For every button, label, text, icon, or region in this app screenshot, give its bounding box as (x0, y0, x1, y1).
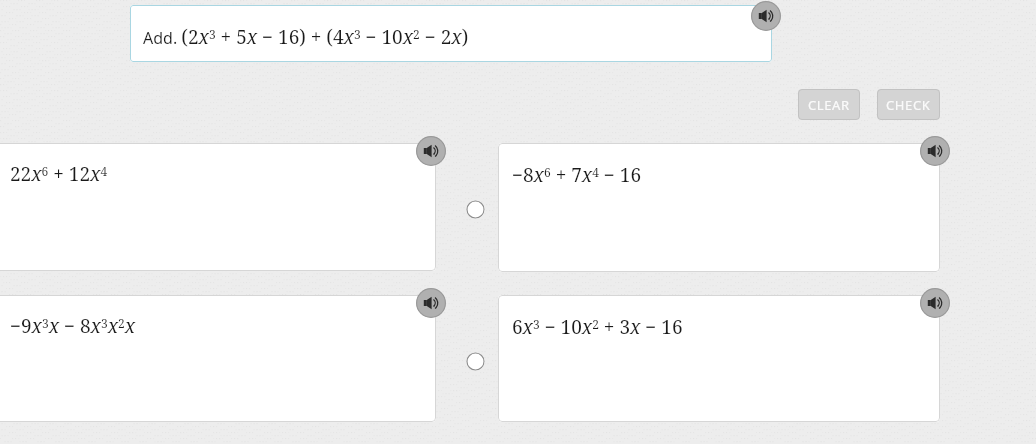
staticText: −9x3x − 8x3x2x (10, 313, 136, 339)
button[interactable]: CHECK (877, 89, 940, 120)
button[interactable]: Answer 22x^6 + 12x^4 (416, 136, 446, 166)
button[interactable]: Select bottom pair (465, 351, 485, 371)
button[interactable]: −8x6 + 7x4 − 16 (498, 143, 940, 272)
staticText: Add. (2x3 + 5x − 16) + (4x3 − 10x2 − 2x) (143, 24, 469, 50)
staticText: CLEAR (808, 96, 850, 114)
staticText: 6x3 − 10x2 + 3x − 16 (512, 314, 683, 340)
button[interactable]: CLEAR (798, 89, 860, 120)
button[interactable]: Add. (2x3 + 5x − 16) + (4x3 − 10x2 − 2x) (130, 5, 772, 62)
staticText: −8x6 + 7x4 − 16 (512, 162, 642, 188)
button[interactable]: −9x3x − 8x3x2x (0, 295, 436, 422)
button[interactable]: 22x6 + 12x4 (0, 143, 436, 271)
button[interactable]: Play question audio (751, 1, 781, 31)
staticText: 22x6 + 12x4 (10, 161, 108, 187)
button[interactable]: Select top pair (465, 199, 485, 219)
button[interactable]: Answer -8x^6 + 7x^4 - 16 (920, 136, 950, 166)
button[interactable]: Answer 6x^3 - 10x^2 + 3x - 16 (920, 288, 950, 318)
staticText: CHECK (886, 96, 931, 114)
button[interactable]: 6x3 − 10x2 + 3x − 16 (498, 295, 940, 422)
button[interactable]: Answer -9x^3x - 8x^3x^2x (416, 288, 446, 318)
